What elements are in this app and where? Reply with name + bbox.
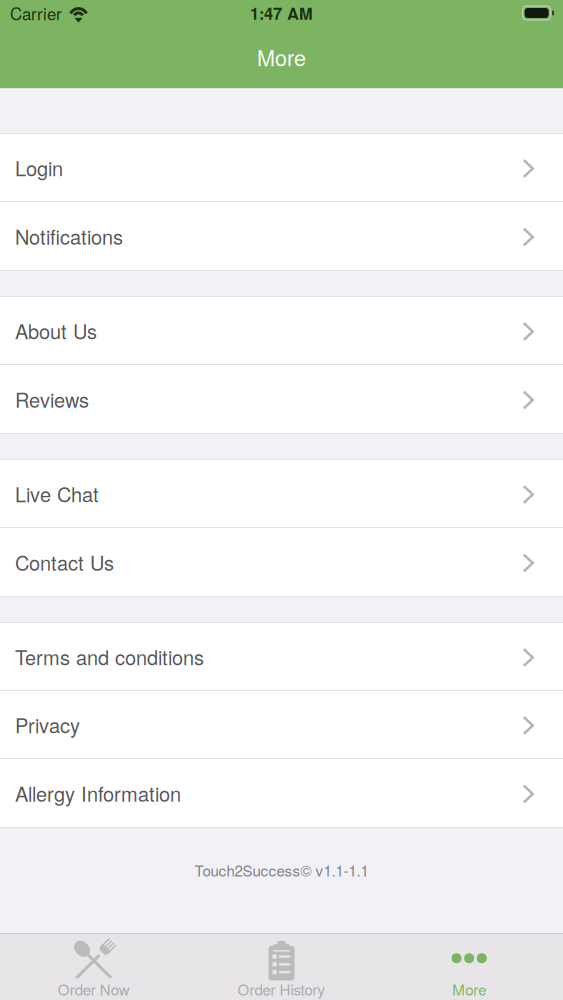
staticText: More xyxy=(257,41,306,72)
staticText: Login xyxy=(15,153,63,182)
staticText: Contact Us xyxy=(15,548,114,576)
staticText: Order History xyxy=(237,978,325,1000)
button[interactable]: Reviews xyxy=(0,365,563,433)
button[interactable]: More xyxy=(375,934,563,1000)
staticText: Carrier xyxy=(10,1,62,25)
button[interactable]: Live Chat xyxy=(0,460,563,527)
staticText: Notifications xyxy=(15,222,123,250)
button[interactable]: About Us xyxy=(0,297,563,364)
staticText: Touch2Success© v1.1-1.1 xyxy=(194,859,368,881)
staticText: Allergy Information xyxy=(15,779,181,807)
button[interactable]: Contact Us xyxy=(0,528,563,596)
staticText: Privacy xyxy=(15,710,80,739)
button[interactable]: Allergy Information xyxy=(0,759,563,827)
button[interactable]: Order History xyxy=(188,934,375,1000)
button[interactable]: Terms and conditions xyxy=(0,623,563,690)
staticText: Terms and conditions xyxy=(15,642,204,671)
staticText: Reviews xyxy=(15,385,89,413)
staticText: More xyxy=(452,978,486,1000)
staticText: 1:47 AM xyxy=(250,1,313,25)
button[interactable]: Notifications xyxy=(0,202,563,270)
staticText: Order Now xyxy=(58,978,130,1000)
staticText: Live Chat xyxy=(15,479,99,508)
button[interactable]: Order Now xyxy=(0,934,188,1000)
button[interactable]: Privacy xyxy=(0,691,563,758)
staticText: About Us xyxy=(15,316,97,345)
button[interactable]: Login xyxy=(0,134,563,201)
